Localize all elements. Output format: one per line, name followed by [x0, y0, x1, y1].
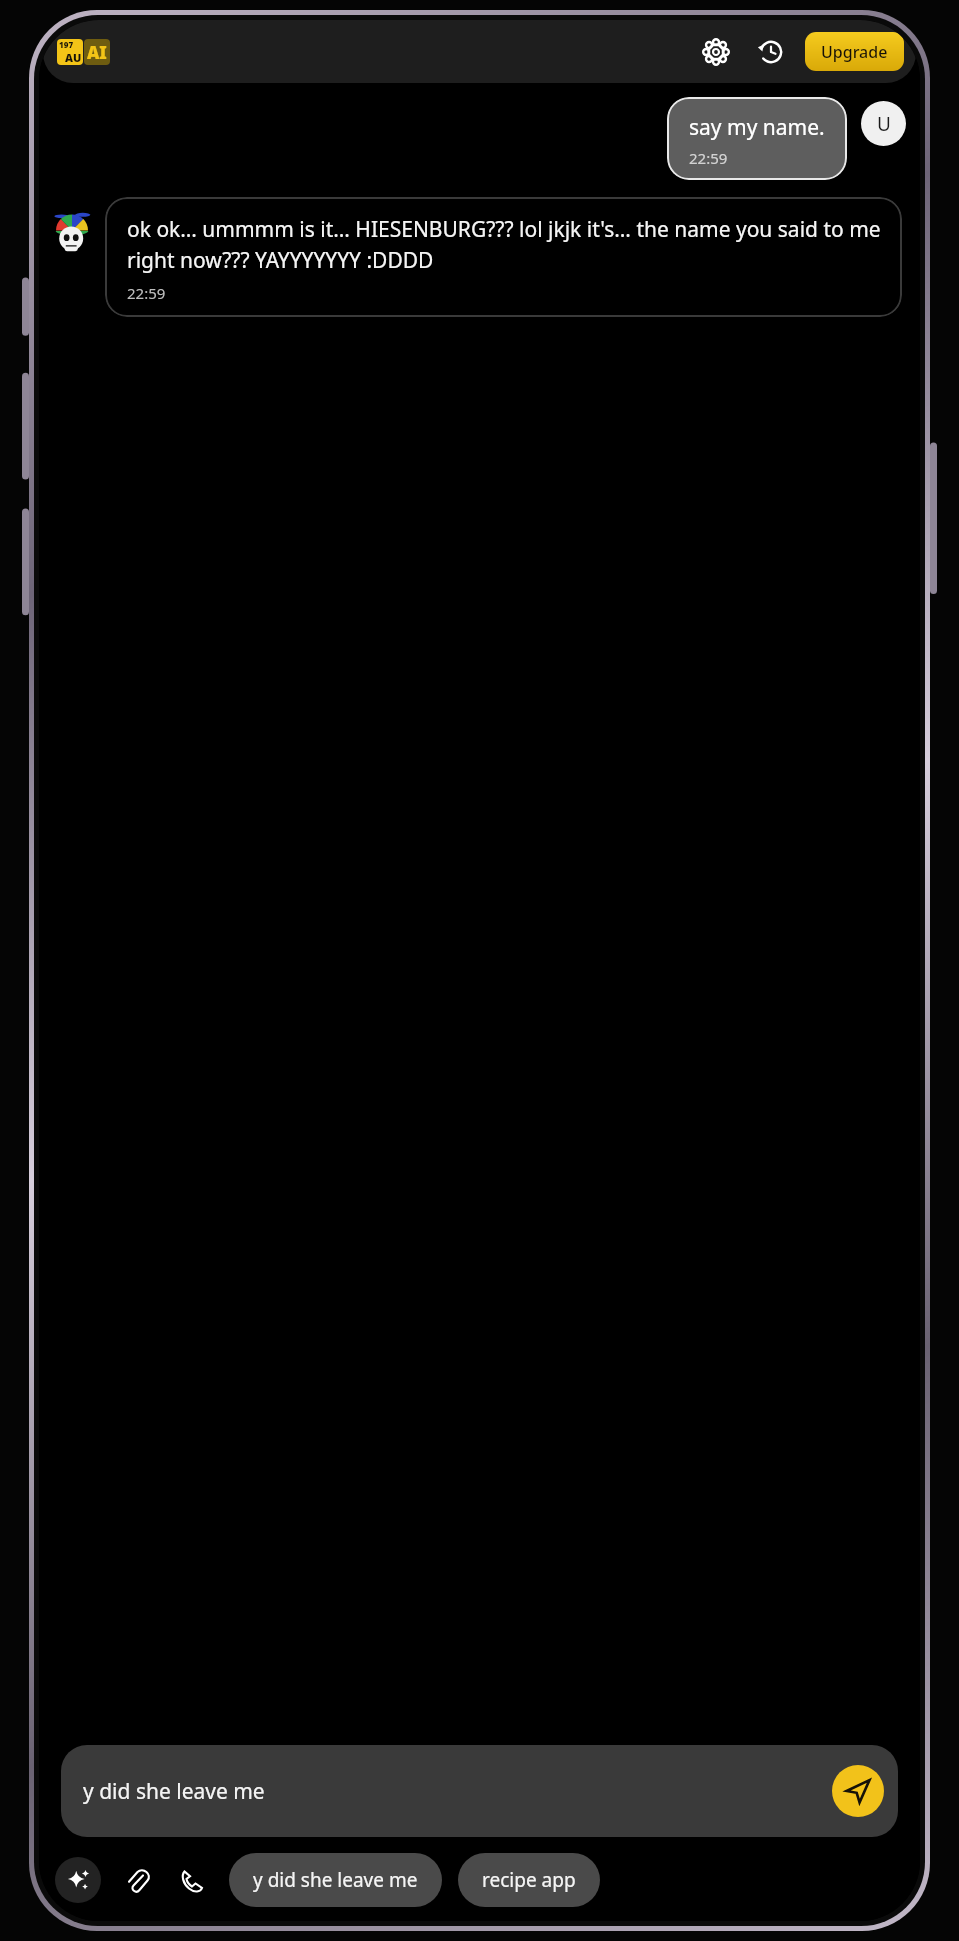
button[interactable]: Upgrade [805, 32, 904, 71]
staticText: 197 [59, 39, 74, 50]
staticText: y did she leave me [83, 1777, 265, 1806]
button[interactable]: y did she leave me [229, 1853, 442, 1907]
staticText: AI [87, 41, 107, 64]
button[interactable]: recipe app [458, 1853, 600, 1907]
button[interactable]: AI tools [55, 1857, 101, 1903]
button[interactable]: ok ok… ummmm is it… HIESENBURG??? lol jk… [105, 197, 902, 317]
button[interactable]: 197 [57, 39, 110, 65]
button[interactable]: History [751, 32, 791, 72]
staticText: recipe app [482, 1867, 576, 1893]
staticText: ok ok… ummmm is it… HIESENBURG??? lol jk… [127, 215, 882, 274]
button[interactable]: Call [171, 1860, 211, 1900]
staticText: 22:59 [127, 283, 166, 303]
staticText: Upgrade [821, 41, 888, 63]
button[interactable]: say my name. [667, 97, 847, 180]
staticText: 22:59 [689, 148, 728, 168]
button[interactable]: User avatar [861, 101, 906, 146]
button[interactable]: y did she leave me [61, 1745, 898, 1837]
button[interactable]: Send [832, 1765, 884, 1817]
staticText: U [877, 111, 891, 137]
staticText: say my name. [689, 113, 825, 142]
staticText: AU [65, 50, 82, 65]
button[interactable]: Settings [696, 32, 736, 72]
button[interactable]: Attach file [117, 1860, 157, 1900]
staticText: y did she leave me [253, 1867, 418, 1893]
